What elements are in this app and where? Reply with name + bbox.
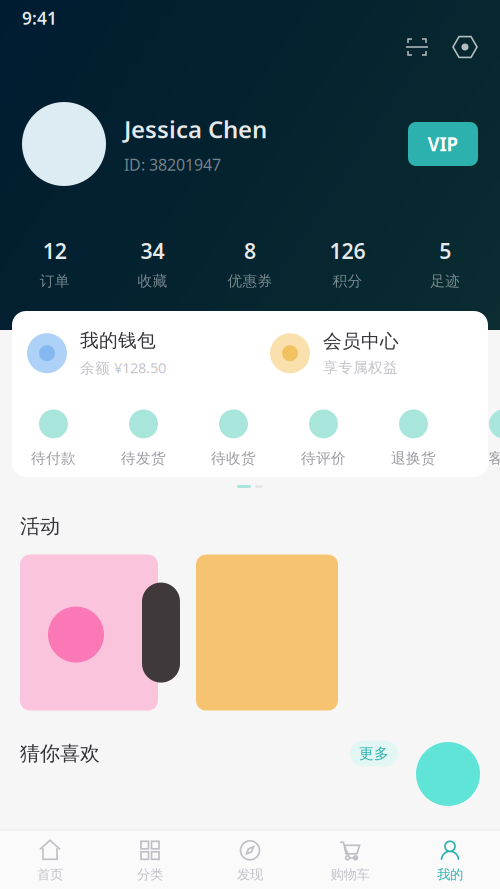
button[interactable]: 12 (6, 237, 104, 290)
button[interactable]: 我的钱包 (27, 329, 270, 377)
staticText: 126 (330, 237, 366, 265)
staticText: ID: 38201947 (124, 154, 221, 175)
button[interactable]: 更多 (350, 741, 398, 767)
button[interactable]: 8 (201, 237, 299, 290)
button[interactable]: 退换货 (368, 409, 458, 467)
staticText: 余额 ¥128.50 (80, 358, 166, 377)
staticText: 发现 (237, 866, 263, 883)
button[interactable] (196, 555, 338, 711)
button[interactable]: 分类 (100, 838, 200, 883)
staticText: 待收货 (211, 449, 256, 467)
staticText: 待发货 (121, 449, 166, 467)
button[interactable]: 会员中心 (270, 330, 500, 377)
staticText: VIP (427, 132, 458, 156)
staticText: 更多 (359, 745, 389, 763)
button[interactable]: Chat (416, 742, 480, 806)
staticText: 客服 (488, 449, 500, 467)
staticText: 34 (140, 237, 164, 265)
button[interactable]: 34 (104, 237, 201, 290)
staticText: 5 (439, 237, 451, 265)
button[interactable]: 我的 (400, 838, 500, 883)
staticText: 猜你喜欢 (20, 741, 100, 766)
staticText: 12 (43, 237, 67, 265)
staticText: 分类 (137, 866, 163, 883)
staticText: 待评价 (301, 449, 346, 467)
staticText: 订单 (40, 272, 70, 290)
button[interactable]: 126 (299, 237, 396, 290)
button[interactable]: Scan (398, 29, 436, 65)
button[interactable]: 待评价 (278, 409, 368, 467)
staticText: 会员中心 (323, 330, 399, 353)
button[interactable]: 购物车 (300, 838, 400, 883)
button[interactable]: 待收货 (188, 409, 278, 467)
staticText: 购物车 (330, 866, 369, 883)
button[interactable]: 发现 (200, 838, 300, 883)
button[interactable]: 首页 (0, 838, 100, 883)
button[interactable]: 待发货 (98, 409, 188, 467)
staticText: 足迹 (430, 272, 460, 290)
staticText: 我的钱包 (80, 329, 156, 352)
staticText: Jessica Chen (124, 113, 267, 145)
staticText: 退换货 (391, 449, 436, 467)
button[interactable] (20, 555, 180, 711)
staticText: 8 (244, 237, 256, 265)
staticText: 9:41 (22, 6, 57, 29)
button[interactable]: 5 (396, 237, 494, 290)
staticText: 我的 (437, 866, 463, 883)
staticText: 积分 (333, 272, 363, 290)
button[interactable]: 待付款 (8, 409, 98, 467)
button[interactable]: Settings (446, 28, 484, 66)
button[interactable]: 客服 (458, 409, 500, 467)
staticText: 待付款 (31, 449, 76, 467)
button[interactable]: VIP (408, 122, 478, 166)
staticText: 享专属权益 (323, 359, 398, 377)
staticText: 优惠券 (227, 272, 272, 290)
staticText: 收藏 (137, 272, 167, 290)
staticText: 活动 (20, 514, 60, 539)
staticText: 首页 (37, 866, 63, 883)
